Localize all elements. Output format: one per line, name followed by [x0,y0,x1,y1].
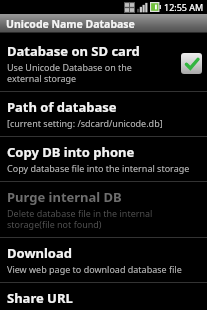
button[interactable]: Copy DB into phone [0,137,207,181]
button[interactable]: Database on SD card checkbox [181,53,202,74]
staticText: [current setting: /sdcard/unicode.db] [7,117,163,129]
staticText: Database on SD card [7,42,140,60]
button[interactable]: Download [0,238,207,282]
staticText: Share URL [7,289,73,303]
staticText: Path of database [7,98,117,116]
button[interactable]: Database on SD card [0,36,207,91]
staticText: 12:55 AM [164,1,204,13]
staticText: Unicode Name Database [6,17,135,31]
button[interactable]: Purge internal DB [0,182,207,237]
staticText: Use Unicode Database on the external sto… [7,61,132,84]
staticText: Copy database file into the internal sto… [7,162,190,174]
button[interactable]: Share URL [0,283,207,310]
staticText: Purge internal DB [7,188,122,206]
staticText: Delete database file in the internal sto… [7,207,153,230]
staticText: View web page to download database file [7,263,182,275]
staticText: Copy DB into phone [7,143,135,161]
staticText: Download [7,244,72,262]
button[interactable]: Path of database [0,92,207,136]
